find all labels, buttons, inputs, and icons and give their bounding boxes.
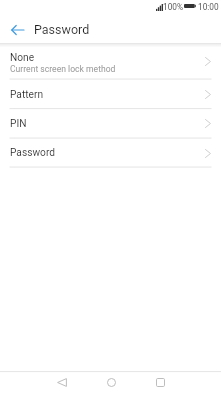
button[interactable]: PIN <box>0 109 221 138</box>
button[interactable]: Pattern <box>0 80 221 109</box>
button[interactable]: Back <box>0 15 34 44</box>
staticText: Pattern <box>10 89 44 101</box>
button[interactable]: Back <box>42 371 82 394</box>
staticText: Password <box>34 22 90 37</box>
staticText: Password <box>10 147 55 159</box>
staticText: PIN <box>10 118 27 130</box>
button[interactable]: None <box>0 44 221 79</box>
staticText: Current screen lock method <box>10 64 116 74</box>
button[interactable]: Recents <box>140 371 180 394</box>
staticText: 100% <box>163 2 184 12</box>
button[interactable]: Home <box>91 371 131 394</box>
staticText: 10:00 <box>198 2 219 12</box>
button[interactable]: Password <box>0 139 221 167</box>
staticText: None <box>10 52 35 64</box>
